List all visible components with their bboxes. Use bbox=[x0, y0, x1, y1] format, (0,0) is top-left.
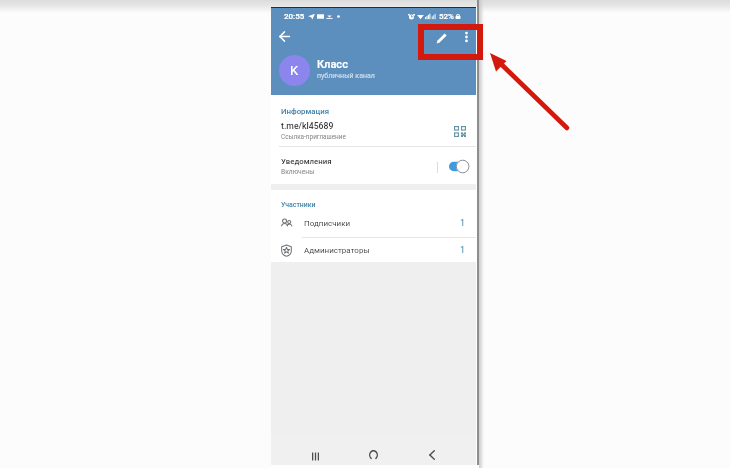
staticText: Ссылка-приглашение bbox=[281, 133, 346, 141]
staticText: 20:55 bbox=[284, 12, 305, 21]
button[interactable]: Edit bbox=[431, 28, 451, 48]
staticText: Участники bbox=[281, 201, 316, 209]
staticText: 1 bbox=[460, 245, 466, 256]
staticText: 52% bbox=[439, 12, 454, 21]
button[interactable]: More options bbox=[456, 27, 476, 47]
staticText: Информация bbox=[281, 107, 330, 116]
button[interactable]: Администраторы bbox=[271, 238, 476, 263]
button[interactable]: Back bbox=[273, 25, 295, 47]
staticText: Подписчики bbox=[304, 219, 460, 228]
staticText: 1 bbox=[460, 218, 466, 229]
button[interactable]: Back bbox=[422, 445, 442, 465]
button[interactable]: Recents bbox=[305, 446, 325, 466]
staticText: Уведомления bbox=[281, 157, 332, 166]
button[interactable]: QR code bbox=[453, 124, 467, 138]
staticText: K bbox=[290, 63, 299, 78]
button[interactable]: Home bbox=[363, 445, 383, 465]
staticText: Класс bbox=[317, 58, 348, 71]
button[interactable]: Подписчики bbox=[271, 210, 476, 237]
button[interactable] bbox=[271, 117, 476, 146]
staticText: публичный канал bbox=[317, 72, 375, 80]
button[interactable] bbox=[271, 147, 476, 182]
staticText: t.me/kl45689 bbox=[281, 121, 334, 131]
staticText: Администраторы bbox=[304, 246, 460, 255]
staticText: Включены bbox=[281, 168, 315, 176]
button[interactable]: Notifications on bbox=[449, 159, 470, 174]
